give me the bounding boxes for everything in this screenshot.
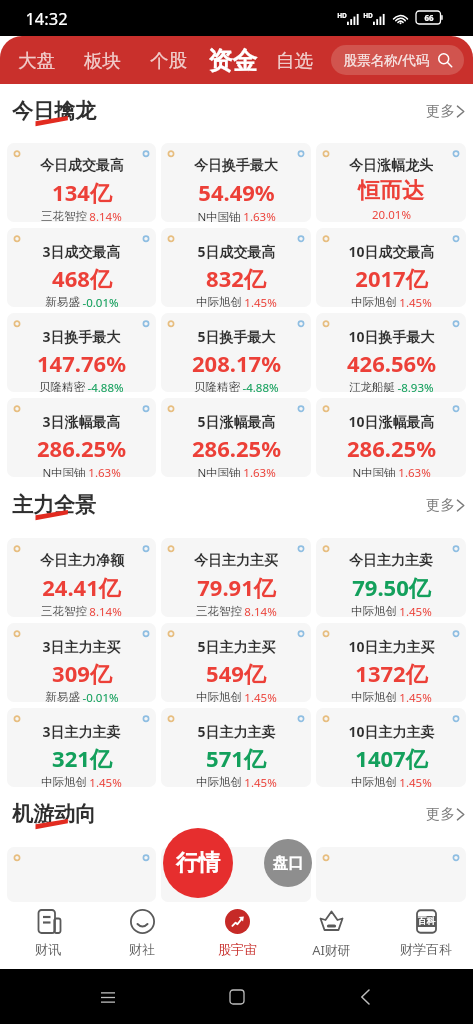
button[interactable]: 10日主力主卖 — [316, 708, 466, 787]
button[interactable]: 盘口 — [264, 839, 312, 887]
staticText: 财社 — [129, 941, 155, 957]
button[interactable]: AI财研 — [284, 902, 378, 969]
button[interactable]: 5日成交最高 — [161, 228, 311, 307]
staticText: 百科 — [418, 916, 435, 927]
button[interactable]: 板块 — [84, 49, 121, 72]
staticText: 1.63% — [88, 465, 121, 477]
staticText: N中国铀 — [197, 209, 241, 222]
button[interactable]: 3日换手最大 — [7, 313, 156, 392]
button[interactable]: 财讯 — [1, 902, 95, 969]
staticText: 286.25% — [347, 433, 436, 463]
staticText: 今日成交最高 — [40, 157, 124, 175]
button[interactable]: 更多 — [426, 96, 466, 126]
staticText: 中际旭创 — [41, 775, 87, 787]
staticText: 1.45% — [244, 775, 277, 787]
button[interactable]: 今日换手最大 — [161, 143, 311, 222]
staticText: 机游动向 — [12, 801, 96, 827]
button[interactable]: 资金 — [208, 45, 257, 76]
button[interactable]: 3日主力主卖 — [7, 708, 156, 787]
button[interactable]: 今日主力主买 — [161, 538, 311, 617]
button[interactable]: 自选 — [276, 49, 313, 72]
staticText: 股票名称/代码 — [343, 51, 430, 69]
staticText: 今日主力净额 — [40, 552, 124, 570]
staticText: 三花智控 — [41, 604, 87, 617]
button[interactable] — [161, 847, 311, 902]
staticText: N中国铀 — [197, 465, 241, 477]
button[interactable]: 5日涨幅最高 — [161, 398, 311, 477]
staticText: 中际旭创 — [196, 690, 242, 702]
staticText: 134亿 — [52, 177, 112, 207]
staticText: 贝隆精密 — [39, 380, 85, 392]
button[interactable]: 财社 — [95, 902, 189, 969]
staticText: 今日主力主卖 — [349, 552, 433, 570]
staticText: 3日主力主卖 — [42, 722, 121, 741]
button[interactable] — [7, 847, 156, 902]
button[interactable] — [316, 847, 466, 902]
staticText: 54.49% — [198, 177, 275, 207]
button[interactable]: 今日主力主卖 — [316, 538, 466, 617]
staticText: 1372亿 — [355, 658, 428, 688]
button[interactable]: 10日主力主买 — [316, 623, 466, 702]
button[interactable]: 今日涨幅龙头 — [316, 143, 466, 222]
staticText: 1.63% — [243, 209, 276, 222]
button[interactable]: 5日主力主买 — [161, 623, 311, 702]
staticText: 行情 — [176, 849, 220, 877]
staticText: N中国铀 — [42, 465, 86, 477]
staticText: 1.45% — [244, 295, 277, 307]
staticText: 1.63% — [398, 465, 431, 477]
staticText: 8.14% — [89, 209, 122, 222]
staticText: -0.01% — [82, 295, 119, 307]
staticText: 5日主力主买 — [197, 637, 276, 656]
staticText: 中际旭创 — [351, 604, 397, 617]
button[interactable]: 股宇宙 — [190, 902, 284, 969]
button[interactable]: 10日换手最大 — [316, 313, 466, 392]
staticText: 24.41亿 — [42, 572, 121, 602]
button[interactable]: 大盘 — [18, 49, 55, 72]
staticText: -8.93% — [397, 380, 434, 392]
staticText: 1.45% — [399, 604, 432, 617]
button[interactable]: 股票名称/代码 — [331, 45, 464, 75]
staticText: 5日换手最大 — [197, 327, 276, 346]
staticText: -4.88% — [87, 380, 124, 392]
button[interactable]: 个股 — [150, 49, 187, 72]
staticText: 今日涨幅龙头 — [349, 157, 433, 175]
button[interactable]: 3日涨幅最高 — [7, 398, 156, 477]
staticText: 江龙船艇 — [349, 380, 395, 392]
button[interactable]: 今日成交最高 — [7, 143, 156, 222]
staticText: 10日换手最大 — [348, 327, 435, 346]
staticText: HD — [337, 11, 347, 20]
staticText: 三花智控 — [41, 209, 87, 222]
staticText: 今日擒龙 — [12, 98, 96, 124]
button[interactable]: Back — [345, 977, 385, 1017]
staticText: 更多 — [426, 496, 455, 514]
button[interactable]: 更多 — [426, 490, 466, 520]
staticText: 286.25% — [37, 433, 126, 463]
button[interactable]: Home — [217, 977, 257, 1017]
button[interactable]: 10日涨幅最高 — [316, 398, 466, 477]
staticText: 中际旭创 — [196, 295, 242, 307]
staticText: 10日主力主卖 — [348, 722, 435, 741]
staticText: 8.14% — [244, 604, 277, 617]
button[interactable]: 百科 — [379, 902, 473, 969]
button[interactable]: 更多 — [426, 799, 466, 829]
staticText: 今日主力主买 — [194, 552, 278, 570]
staticText: 5日成交最高 — [197, 242, 276, 261]
staticText: 财讯 — [35, 941, 61, 957]
staticText: 79.91亿 — [197, 572, 276, 602]
staticText: 5日主力主卖 — [197, 722, 276, 741]
staticText: 20.01% — [372, 207, 411, 222]
staticText: 468亿 — [52, 263, 112, 293]
staticText: 中际旭创 — [351, 295, 397, 307]
staticText: 新易盛 — [45, 295, 80, 307]
button[interactable]: 今日主力净额 — [7, 538, 156, 617]
button[interactable]: 10日成交最高 — [316, 228, 466, 307]
button[interactable]: 3日主力主买 — [7, 623, 156, 702]
button[interactable]: 5日换手最大 — [161, 313, 311, 392]
button[interactable]: 行情 — [163, 828, 233, 898]
button[interactable]: Recent apps — [88, 977, 128, 1017]
button[interactable]: 3日成交最高 — [7, 228, 156, 307]
staticText: -0.01% — [82, 690, 119, 702]
staticText: 208.17% — [192, 348, 281, 378]
staticText: 更多 — [426, 102, 455, 120]
button[interactable]: 5日主力主卖 — [161, 708, 311, 787]
